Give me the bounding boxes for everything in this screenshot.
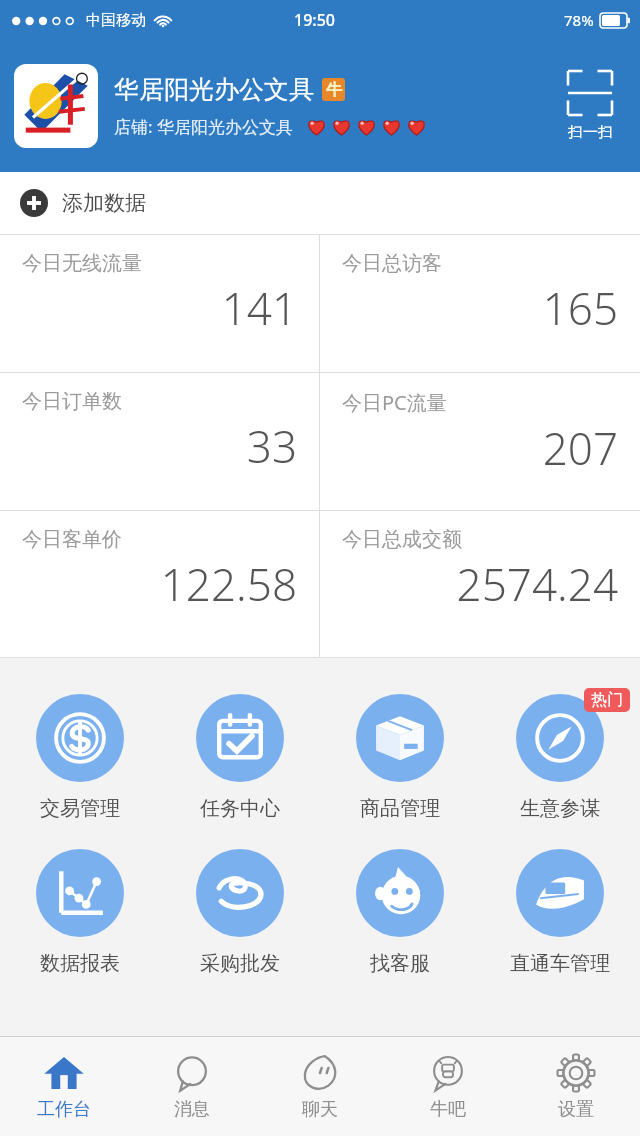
button[interactable]: 聊天 bbox=[256, 1037, 384, 1136]
button[interactable]: 热门 bbox=[480, 694, 640, 821]
staticText: 牛吧 bbox=[430, 1098, 466, 1121]
staticText: 今日PC流量 bbox=[342, 389, 447, 416]
staticText: 找客服 bbox=[370, 951, 430, 976]
button[interactable]: 设置 bbox=[512, 1037, 640, 1136]
button[interactable]: 牛吧 bbox=[384, 1037, 512, 1136]
staticText: 工作台 bbox=[37, 1098, 91, 1121]
button[interactable]: 扫一扫 bbox=[554, 40, 626, 172]
staticText: 今日无线流量 bbox=[22, 251, 142, 276]
button[interactable]: 采购批发 bbox=[160, 849, 320, 976]
staticText: 商品管理 bbox=[360, 796, 440, 821]
button[interactable]: 找客服 bbox=[320, 849, 480, 976]
staticText: 141 bbox=[22, 278, 297, 338]
button[interactable]: 直通车管理 bbox=[480, 849, 640, 976]
staticText: 165 bbox=[342, 278, 618, 338]
staticText: 采购批发 bbox=[200, 951, 280, 976]
button[interactable] bbox=[14, 64, 98, 148]
button[interactable]: 商品管理 bbox=[320, 694, 480, 821]
button[interactable]: 今日客单价 bbox=[0, 511, 319, 657]
staticText: 扫一扫 bbox=[568, 123, 613, 142]
staticText: 牛 bbox=[326, 80, 342, 100]
button[interactable]: 消息 bbox=[128, 1037, 256, 1136]
staticText: 生意参谋 bbox=[520, 796, 600, 821]
button[interactable]: 添加数据 bbox=[0, 172, 640, 234]
staticText: 207 bbox=[342, 418, 618, 478]
button[interactable]: 交易管理 bbox=[0, 694, 160, 821]
staticText: 设置 bbox=[558, 1098, 594, 1121]
staticText: 2574.24 bbox=[342, 554, 618, 614]
staticText: 热门 bbox=[591, 690, 623, 710]
staticText: 店铺: 华居阳光办公文具 bbox=[114, 115, 293, 138]
staticText: 今日订单数 bbox=[22, 389, 122, 414]
button[interactable]: 今日总成交额 bbox=[320, 511, 640, 657]
staticText: 华居阳光办公文具 bbox=[114, 74, 314, 105]
button[interactable]: 工作台 bbox=[0, 1037, 128, 1136]
staticText: 33 bbox=[22, 416, 297, 476]
button[interactable]: 今日无线流量 bbox=[0, 235, 319, 372]
staticText: 今日总成交额 bbox=[342, 527, 462, 552]
staticText: 今日客单价 bbox=[22, 527, 122, 552]
staticText: 直通车管理 bbox=[510, 951, 610, 976]
button[interactable]: 今日PC流量 bbox=[320, 373, 640, 510]
button[interactable]: 今日总访客 bbox=[320, 235, 640, 372]
staticText: 任务中心 bbox=[200, 796, 280, 821]
button[interactable]: 任务中心 bbox=[160, 694, 320, 821]
staticText: 今日总访客 bbox=[342, 251, 442, 276]
staticText: 交易管理 bbox=[40, 796, 120, 821]
staticText: 聊天 bbox=[302, 1098, 338, 1121]
staticText: 中国移动 bbox=[86, 11, 146, 30]
staticText: 19:50 bbox=[294, 9, 335, 31]
staticText: 消息 bbox=[174, 1098, 210, 1121]
staticText: 数据报表 bbox=[40, 951, 120, 976]
staticText: 122.58 bbox=[22, 554, 297, 614]
staticText: 78% bbox=[564, 10, 594, 30]
button[interactable]: 数据报表 bbox=[0, 849, 160, 976]
button[interactable]: 今日订单数 bbox=[0, 373, 319, 510]
staticText: 添加数据 bbox=[62, 190, 146, 216]
